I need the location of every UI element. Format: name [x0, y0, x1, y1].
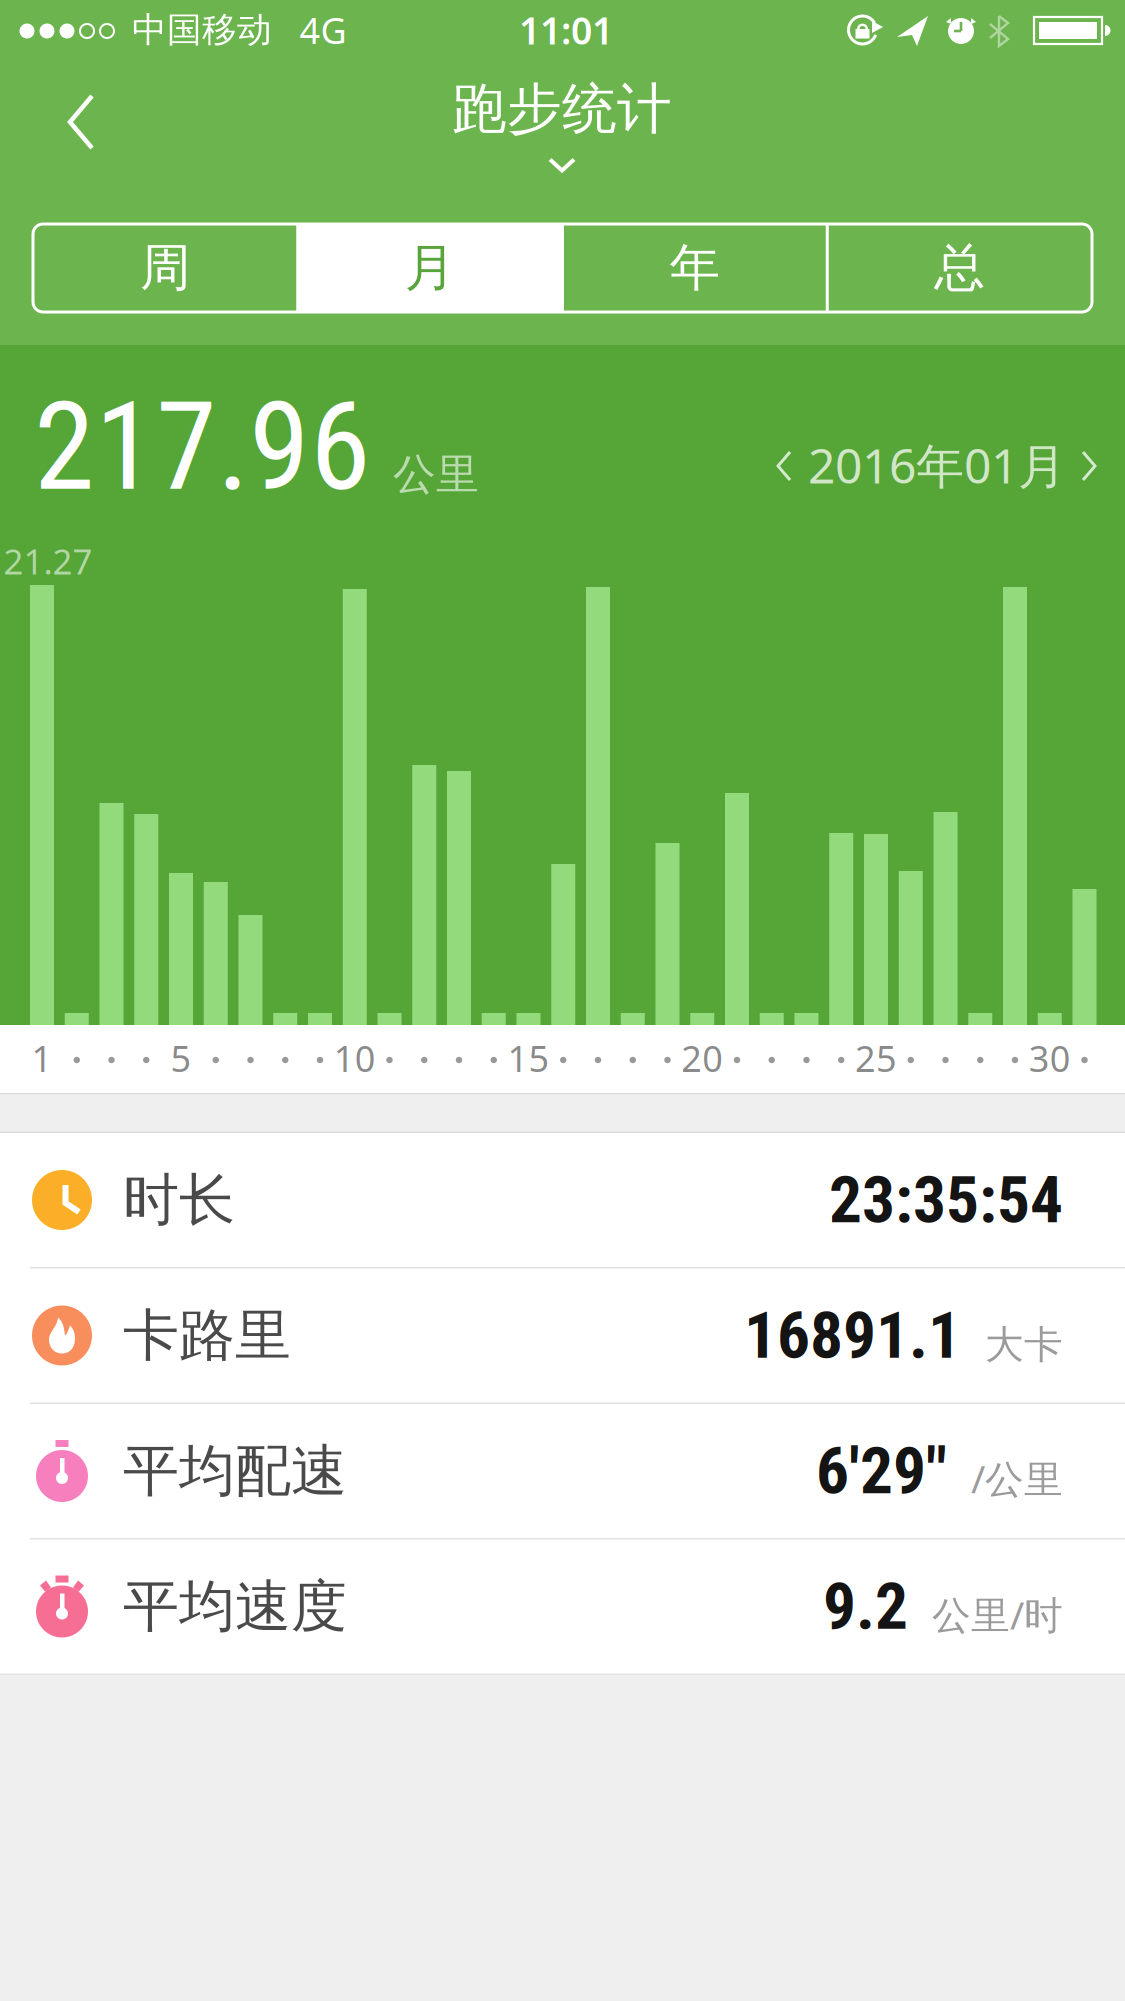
staticText: 平均速度	[123, 1572, 347, 1641]
staticText: 2016年01月	[808, 433, 1066, 497]
staticText: 周	[140, 237, 191, 299]
staticText: 平均配速	[123, 1437, 347, 1505]
staticText: 23:35:54	[829, 1162, 1063, 1238]
staticText: 11:01	[519, 5, 613, 55]
button[interactable]: 年	[562, 224, 827, 312]
staticText: 25	[855, 1034, 897, 1082]
staticText: 总	[934, 237, 985, 299]
staticText: 5	[170, 1034, 191, 1082]
button[interactable]: 月	[298, 224, 563, 312]
staticText: 20	[681, 1034, 723, 1082]
staticText: 卡路里	[123, 1301, 291, 1370]
staticText: 16891.1	[744, 1297, 961, 1374]
staticText: 9.2	[823, 1568, 908, 1645]
staticText: 公里	[393, 448, 479, 501]
staticText: 30	[1029, 1034, 1071, 1082]
staticText: 年	[669, 237, 720, 299]
staticText: /公里	[971, 1453, 1063, 1504]
staticText: 跑步统计	[452, 75, 672, 142]
staticText: 中国移动	[132, 9, 272, 51]
button[interactable]: 总	[827, 224, 1092, 312]
staticText: 时长	[123, 1166, 235, 1234]
button[interactable]: Back	[0, 60, 80, 160]
staticText: 6'29"	[816, 1433, 947, 1509]
staticText: 4G	[299, 6, 346, 54]
staticText: 公里/时	[932, 1589, 1063, 1640]
staticText: 15	[507, 1034, 549, 1082]
staticText: 1	[31, 1034, 52, 1082]
staticText: 月	[405, 237, 456, 299]
staticText: 217.96	[34, 375, 371, 519]
button[interactable]: 周	[33, 224, 298, 312]
staticText: 10	[334, 1034, 376, 1082]
staticText: 大卡	[985, 1321, 1063, 1369]
staticText: 21.27	[3, 538, 92, 584]
